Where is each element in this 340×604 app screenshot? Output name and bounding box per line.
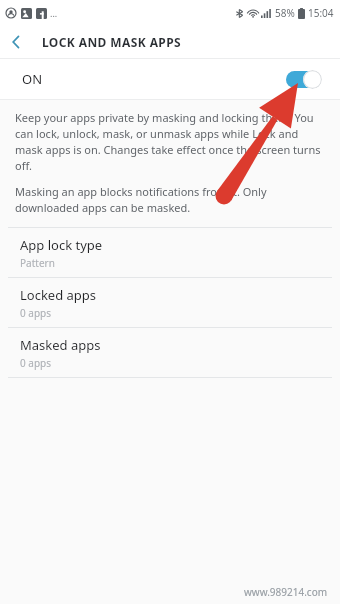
staticText: ON <box>22 70 43 88</box>
staticText: ... <box>50 7 58 19</box>
staticText: Masking an app blocks notifications from… <box>15 184 327 215</box>
staticText: 58% <box>275 6 295 20</box>
button[interactable]: Masked apps <box>0 328 340 377</box>
button[interactable]: Lock and mask apps toggle <box>286 70 324 89</box>
staticText: Masked apps <box>20 336 101 354</box>
staticText: www.989214.com <box>244 585 328 599</box>
staticText: 0 apps <box>20 306 52 320</box>
button[interactable]: Back <box>0 26 32 58</box>
staticText: 15:04 <box>308 6 334 20</box>
staticText: Locked apps <box>20 286 97 304</box>
staticText: 0 apps <box>20 356 52 370</box>
button[interactable]: ON <box>0 59 340 99</box>
staticText: LOCK AND MASK APPS <box>42 34 182 50</box>
button[interactable]: App lock type <box>0 228 340 277</box>
staticText: Keep your apps private by masking and lo… <box>15 110 327 173</box>
staticText: App lock type <box>20 236 103 254</box>
button[interactable]: Locked apps <box>0 278 340 327</box>
staticText: Pattern <box>20 256 55 270</box>
